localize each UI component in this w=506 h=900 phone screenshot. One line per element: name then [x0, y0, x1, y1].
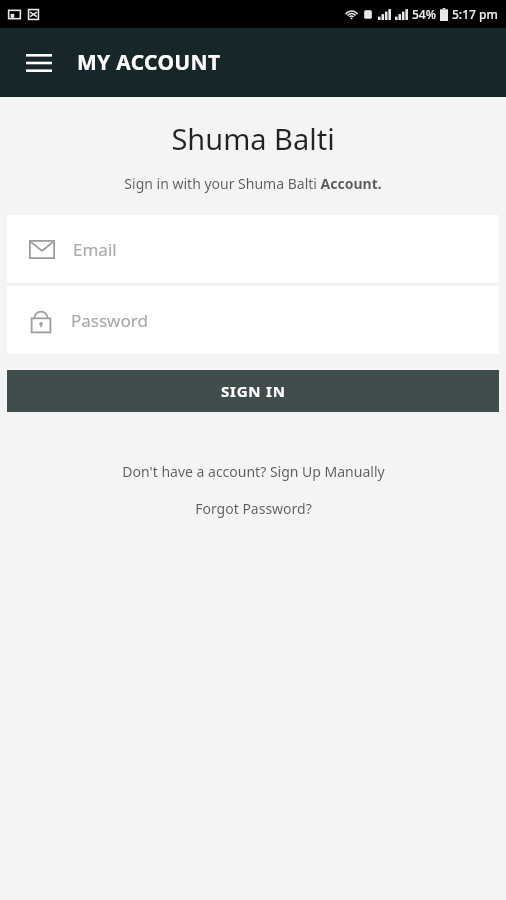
staticText: MY ACCOUNT	[77, 48, 221, 77]
staticText: Sign in with your Shuma Balti Account.	[0, 174, 506, 193]
staticText: SIGN IN	[221, 381, 286, 401]
staticText: Password	[71, 309, 148, 332]
button[interactable]: Email	[7, 215, 499, 283]
button[interactable]: Forgot Password?	[0, 499, 506, 518]
staticText: Shuma Balti	[0, 119, 506, 158]
staticText: Forgot Password?	[195, 499, 312, 518]
staticText: 54%	[412, 6, 436, 22]
staticText: 5:17 pm	[452, 6, 498, 22]
button[interactable]: Don't have a account? Sign Up Manually	[0, 462, 506, 481]
staticText: Email	[73, 238, 117, 261]
button[interactable]: SIGN IN	[7, 370, 499, 412]
staticText: Don't have a account? Sign Up Manually	[122, 462, 385, 481]
button[interactable]: Password	[7, 286, 499, 354]
button[interactable]: Open navigation menu	[13, 37, 65, 89]
